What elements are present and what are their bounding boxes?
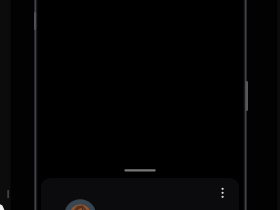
- button[interactable]: [215, 183, 231, 205]
- button[interactable]: [41, 178, 239, 210]
- button[interactable]: [63, 197, 97, 210]
